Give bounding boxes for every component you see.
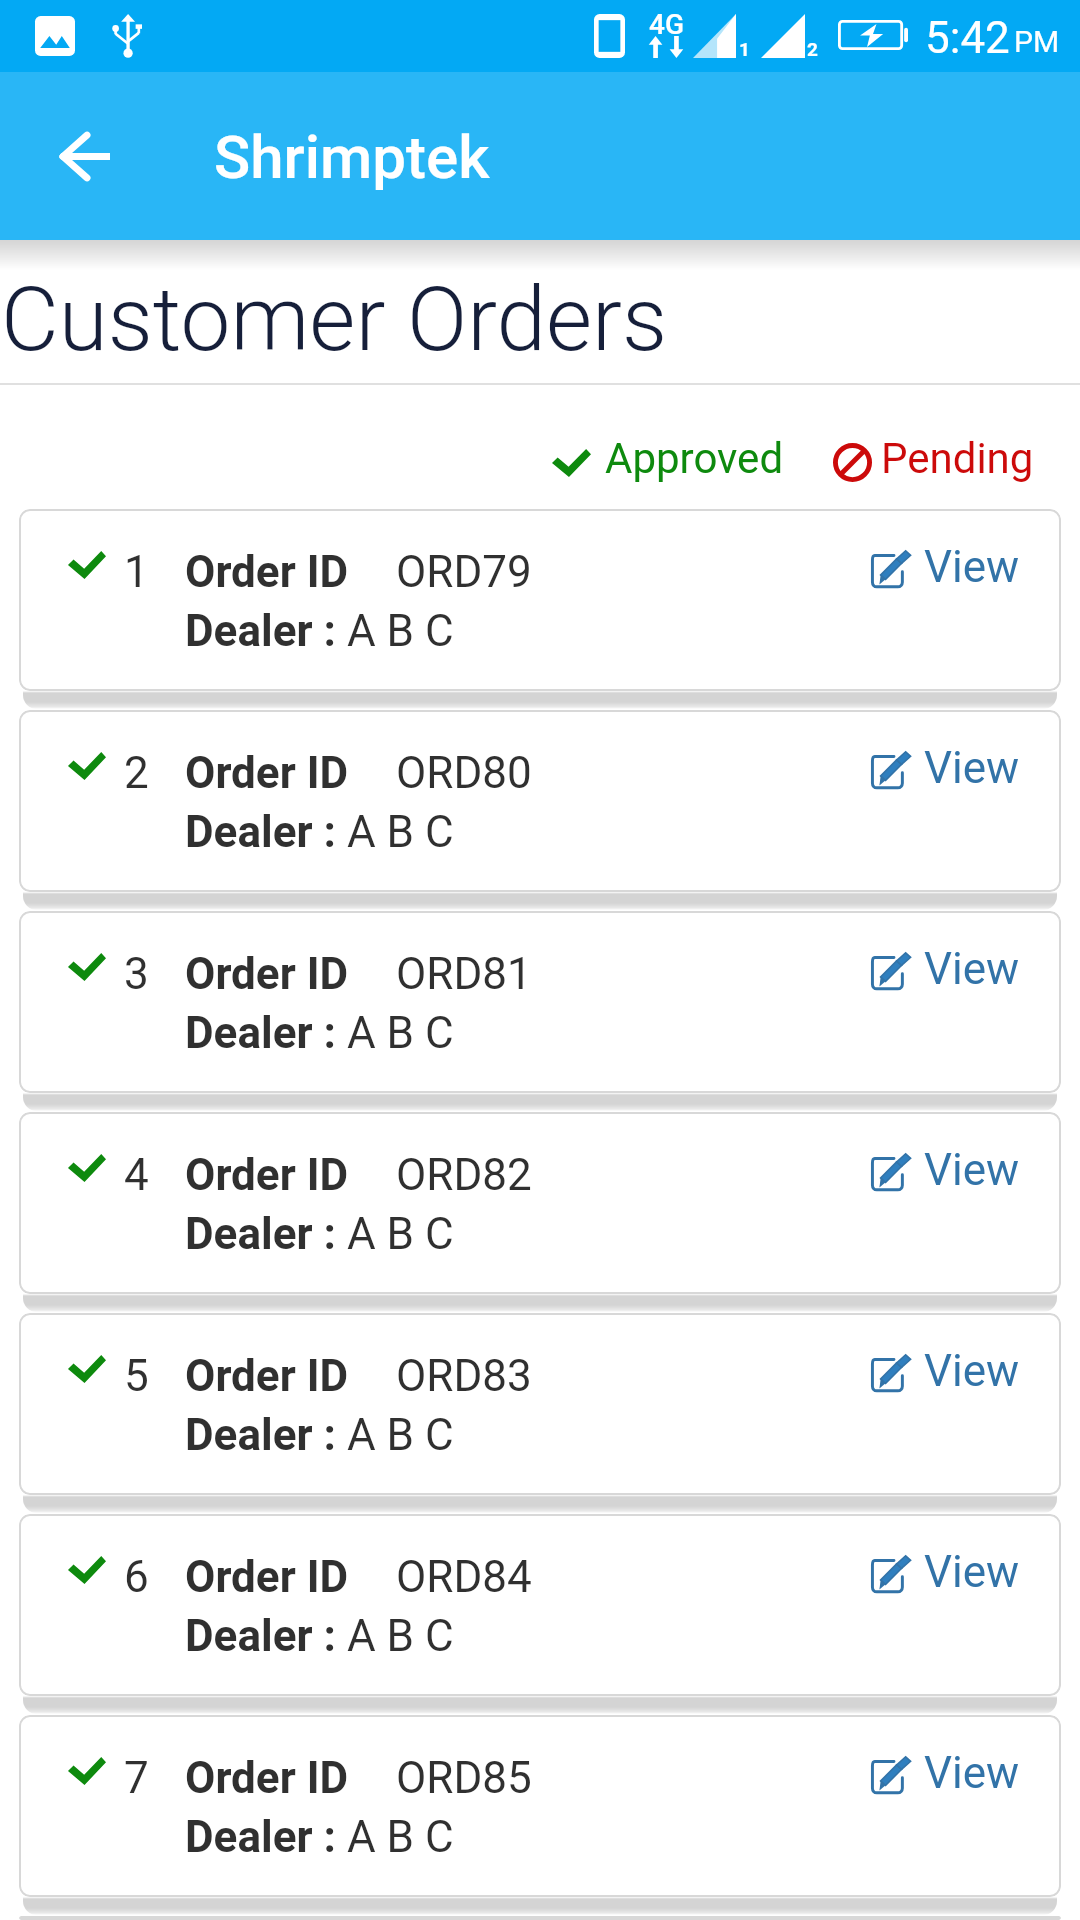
staticText: ORD79: [396, 546, 532, 598]
staticText: ORD83: [396, 1350, 532, 1402]
staticText: Approved: [605, 434, 784, 483]
staticText: ORD82: [396, 1149, 532, 1201]
staticText: 5: [124, 1350, 149, 1402]
staticText: View: [924, 742, 1020, 794]
staticText: Dealer :: [185, 1811, 336, 1863]
staticText: 1: [739, 38, 750, 60]
staticText: 5:42: [925, 12, 1010, 64]
staticText: View: [924, 1144, 1020, 1196]
staticText: Order ID: [185, 1149, 349, 1201]
staticText: Order ID: [185, 948, 349, 1000]
button[interactable]: View: [871, 1546, 1020, 1598]
staticText: ORD81: [396, 948, 532, 1000]
button[interactable]: 7: [19, 1715, 1061, 1897]
staticText: Dealer :: [185, 1208, 336, 1260]
staticText: Dealer :: [185, 806, 336, 858]
button[interactable]: View: [871, 541, 1020, 593]
staticText: ORD84: [396, 1551, 532, 1603]
button[interactable]: 1: [19, 509, 1061, 691]
staticText: A B C: [347, 1007, 454, 1059]
staticText: Pending: [881, 434, 1034, 483]
staticText: 3: [124, 948, 149, 1000]
staticText: View: [924, 1546, 1020, 1598]
staticText: Dealer :: [185, 1409, 336, 1461]
button[interactable]: 6: [19, 1514, 1061, 1696]
staticText: 4G: [649, 8, 684, 41]
staticText: A B C: [347, 1208, 454, 1260]
staticText: Order ID: [185, 1551, 349, 1603]
staticText: A B C: [347, 605, 454, 657]
staticText: 7: [124, 1752, 149, 1804]
staticText: ORD80: [396, 747, 532, 799]
staticText: Dealer :: [185, 1007, 336, 1059]
staticText: 2: [124, 747, 149, 799]
staticText: View: [924, 943, 1020, 995]
staticText: PM: [1014, 24, 1060, 59]
staticText: Order ID: [185, 1350, 349, 1402]
staticText: View: [924, 541, 1020, 593]
staticText: ORD85: [396, 1752, 532, 1804]
button[interactable]: 4: [19, 1112, 1061, 1294]
staticText: View: [924, 1345, 1020, 1397]
button[interactable]: 3: [19, 911, 1061, 1093]
staticText: Shrimptek: [214, 122, 490, 192]
staticText: View: [924, 1747, 1020, 1799]
button[interactable]: 5: [19, 1313, 1061, 1495]
staticText: 4: [124, 1149, 149, 1201]
staticText: Order ID: [185, 546, 349, 598]
button[interactable]: View: [871, 742, 1020, 794]
staticText: A B C: [347, 1811, 454, 1863]
button[interactable]: 2: [19, 710, 1061, 892]
staticText: Order ID: [185, 1752, 349, 1804]
staticText: Dealer :: [185, 1610, 336, 1662]
staticText: A B C: [347, 1409, 454, 1461]
button[interactable]: View: [871, 1144, 1020, 1196]
button[interactable]: Back: [50, 121, 120, 191]
staticText: Order ID: [185, 747, 349, 799]
staticText: A B C: [347, 1610, 454, 1662]
button[interactable]: View: [871, 1747, 1020, 1799]
button[interactable]: View: [871, 1345, 1020, 1397]
staticText: Dealer :: [185, 605, 336, 657]
staticText: A B C: [347, 806, 454, 858]
staticText: 6: [124, 1551, 149, 1603]
staticText: 2: [807, 38, 818, 60]
staticText: 1: [124, 546, 149, 598]
staticText: Customer Orders: [1, 267, 668, 371]
button[interactable]: View: [871, 943, 1020, 995]
